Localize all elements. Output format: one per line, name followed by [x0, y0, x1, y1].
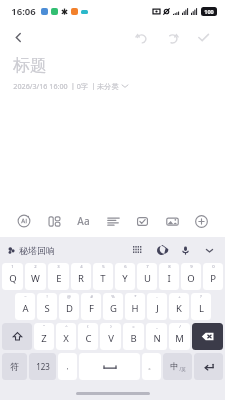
- button[interactable]: !: [37, 293, 57, 320]
- staticText: ): [110, 324, 112, 330]
- staticText: I: [167, 272, 171, 285]
- staticText: J: [156, 302, 159, 315]
- button[interactable]: 符: [2, 353, 27, 380]
- staticText: 9: [190, 264, 193, 270]
- staticText: L: [199, 302, 204, 315]
- staticText: Z: [41, 332, 47, 345]
- staticText: #: [90, 294, 93, 300]
- button[interactable]: 3: [48, 263, 69, 290]
- button[interactable]: ，: [58, 353, 77, 380]
- staticText: 秘塔回响: [19, 245, 55, 256]
- staticText: B: [130, 332, 137, 345]
- staticText: ，: [64, 362, 71, 371]
- button[interactable]: ?: [191, 293, 211, 320]
- button[interactable]: AI assistant: [11, 208, 37, 234]
- staticText: +: [178, 294, 181, 300]
- staticText: P: [210, 272, 216, 285]
- button[interactable]: Backspace: [192, 323, 223, 350]
- staticText: K: [176, 302, 182, 315]
- staticText: 1: [11, 264, 14, 270]
- button[interactable]: _: [146, 323, 167, 350]
- button[interactable]: Back: [5, 24, 31, 50]
- button[interactable]: ~: [15, 293, 35, 320]
- button[interactable]: %: [103, 293, 123, 320]
- button[interactable]: 4: [71, 263, 91, 290]
- staticText: 0: [212, 264, 215, 270]
- staticText: R: [78, 272, 84, 285]
- staticText: 123: [36, 361, 50, 372]
- button[interactable]: Enter: [194, 353, 223, 380]
- staticText: E: [56, 272, 62, 285]
- staticText: !: [46, 294, 48, 300]
- staticText: -: [156, 294, 158, 300]
- staticText: N: [153, 332, 161, 345]
- button[interactable]: ): [100, 323, 121, 350]
- staticText: C: [85, 332, 92, 345]
- button[interactable]: 7: [137, 263, 157, 290]
- button[interactable]: 中: [163, 353, 192, 380]
- button[interactable]: @: [59, 293, 79, 320]
- button[interactable]: 0: [203, 263, 223, 290]
- staticText: /英: [179, 366, 186, 372]
- staticText: Q: [9, 272, 17, 285]
- button[interactable]: Keyboard settings: [130, 243, 145, 258]
- button[interactable]: 秘塔回响: [8, 245, 55, 256]
- staticText: ": [43, 324, 45, 330]
- button[interactable]: Align text: [100, 208, 126, 234]
- staticText: A: [22, 302, 29, 315]
- button[interactable]: Undo: [128, 24, 154, 50]
- button[interactable]: 2: [25, 263, 46, 290]
- staticText: T: [100, 272, 106, 285]
- button[interactable]: =: [123, 323, 144, 350]
- button[interactable]: /: [169, 323, 190, 350]
- button[interactable]: Voice input: [178, 243, 193, 258]
- button[interactable]: Redo: [159, 24, 185, 50]
- staticText: 4: [80, 264, 83, 270]
- staticText: H: [131, 302, 139, 315]
- button[interactable]: Done: [190, 24, 216, 50]
- button[interactable]: ": [34, 323, 54, 350]
- button[interactable]: 8: [159, 263, 179, 290]
- button[interactable]: (: [78, 323, 98, 350]
- staticText: 2026/3/16 16:00 丨0字 丨未分类: [13, 81, 119, 91]
- staticText: S: [44, 302, 50, 315]
- staticText: U: [144, 272, 151, 285]
- button[interactable]: ^: [56, 323, 76, 350]
- staticText: (: [87, 324, 89, 330]
- button[interactable]: 9: [181, 263, 201, 290]
- staticText: M: [175, 332, 184, 345]
- staticText: F: [89, 302, 94, 315]
- staticText: X: [63, 332, 69, 345]
- button[interactable]: +: [169, 293, 189, 320]
- staticText: W: [31, 272, 40, 285]
- staticText: 标题: [13, 55, 47, 76]
- button[interactable]: Space: [79, 353, 140, 380]
- button[interactable]: 1: [2, 263, 23, 290]
- staticText: 符: [10, 361, 19, 372]
- button[interactable]: -: [147, 293, 167, 320]
- staticText: ^: [65, 324, 68, 330]
- staticText: 。: [148, 362, 155, 371]
- staticText: 中: [170, 361, 179, 372]
- staticText: 2: [34, 264, 37, 270]
- staticText: Aa: [77, 214, 90, 228]
- button[interactable]: *: [125, 293, 145, 320]
- button[interactable]: Night mode: [154, 243, 169, 258]
- button[interactable]: Text style: [70, 208, 96, 234]
- button[interactable]: Shift: [2, 323, 32, 350]
- staticText: =: [132, 324, 135, 330]
- button[interactable]: Split layout: [41, 208, 67, 234]
- button[interactable]: 。: [142, 353, 161, 380]
- staticText: Y: [122, 272, 128, 285]
- button[interactable]: 5: [93, 263, 113, 290]
- staticText: D: [66, 302, 73, 315]
- button[interactable]: Checklist: [129, 208, 155, 234]
- button[interactable]: Insert image: [159, 208, 185, 234]
- staticText: @: [67, 294, 71, 300]
- staticText: 16:06: [11, 5, 36, 18]
- button[interactable]: Hide keyboard: [202, 243, 217, 258]
- button[interactable]: 6: [115, 263, 135, 290]
- button[interactable]: More options: [188, 208, 214, 234]
- button[interactable]: #: [81, 293, 101, 320]
- button[interactable]: 123: [29, 353, 56, 380]
